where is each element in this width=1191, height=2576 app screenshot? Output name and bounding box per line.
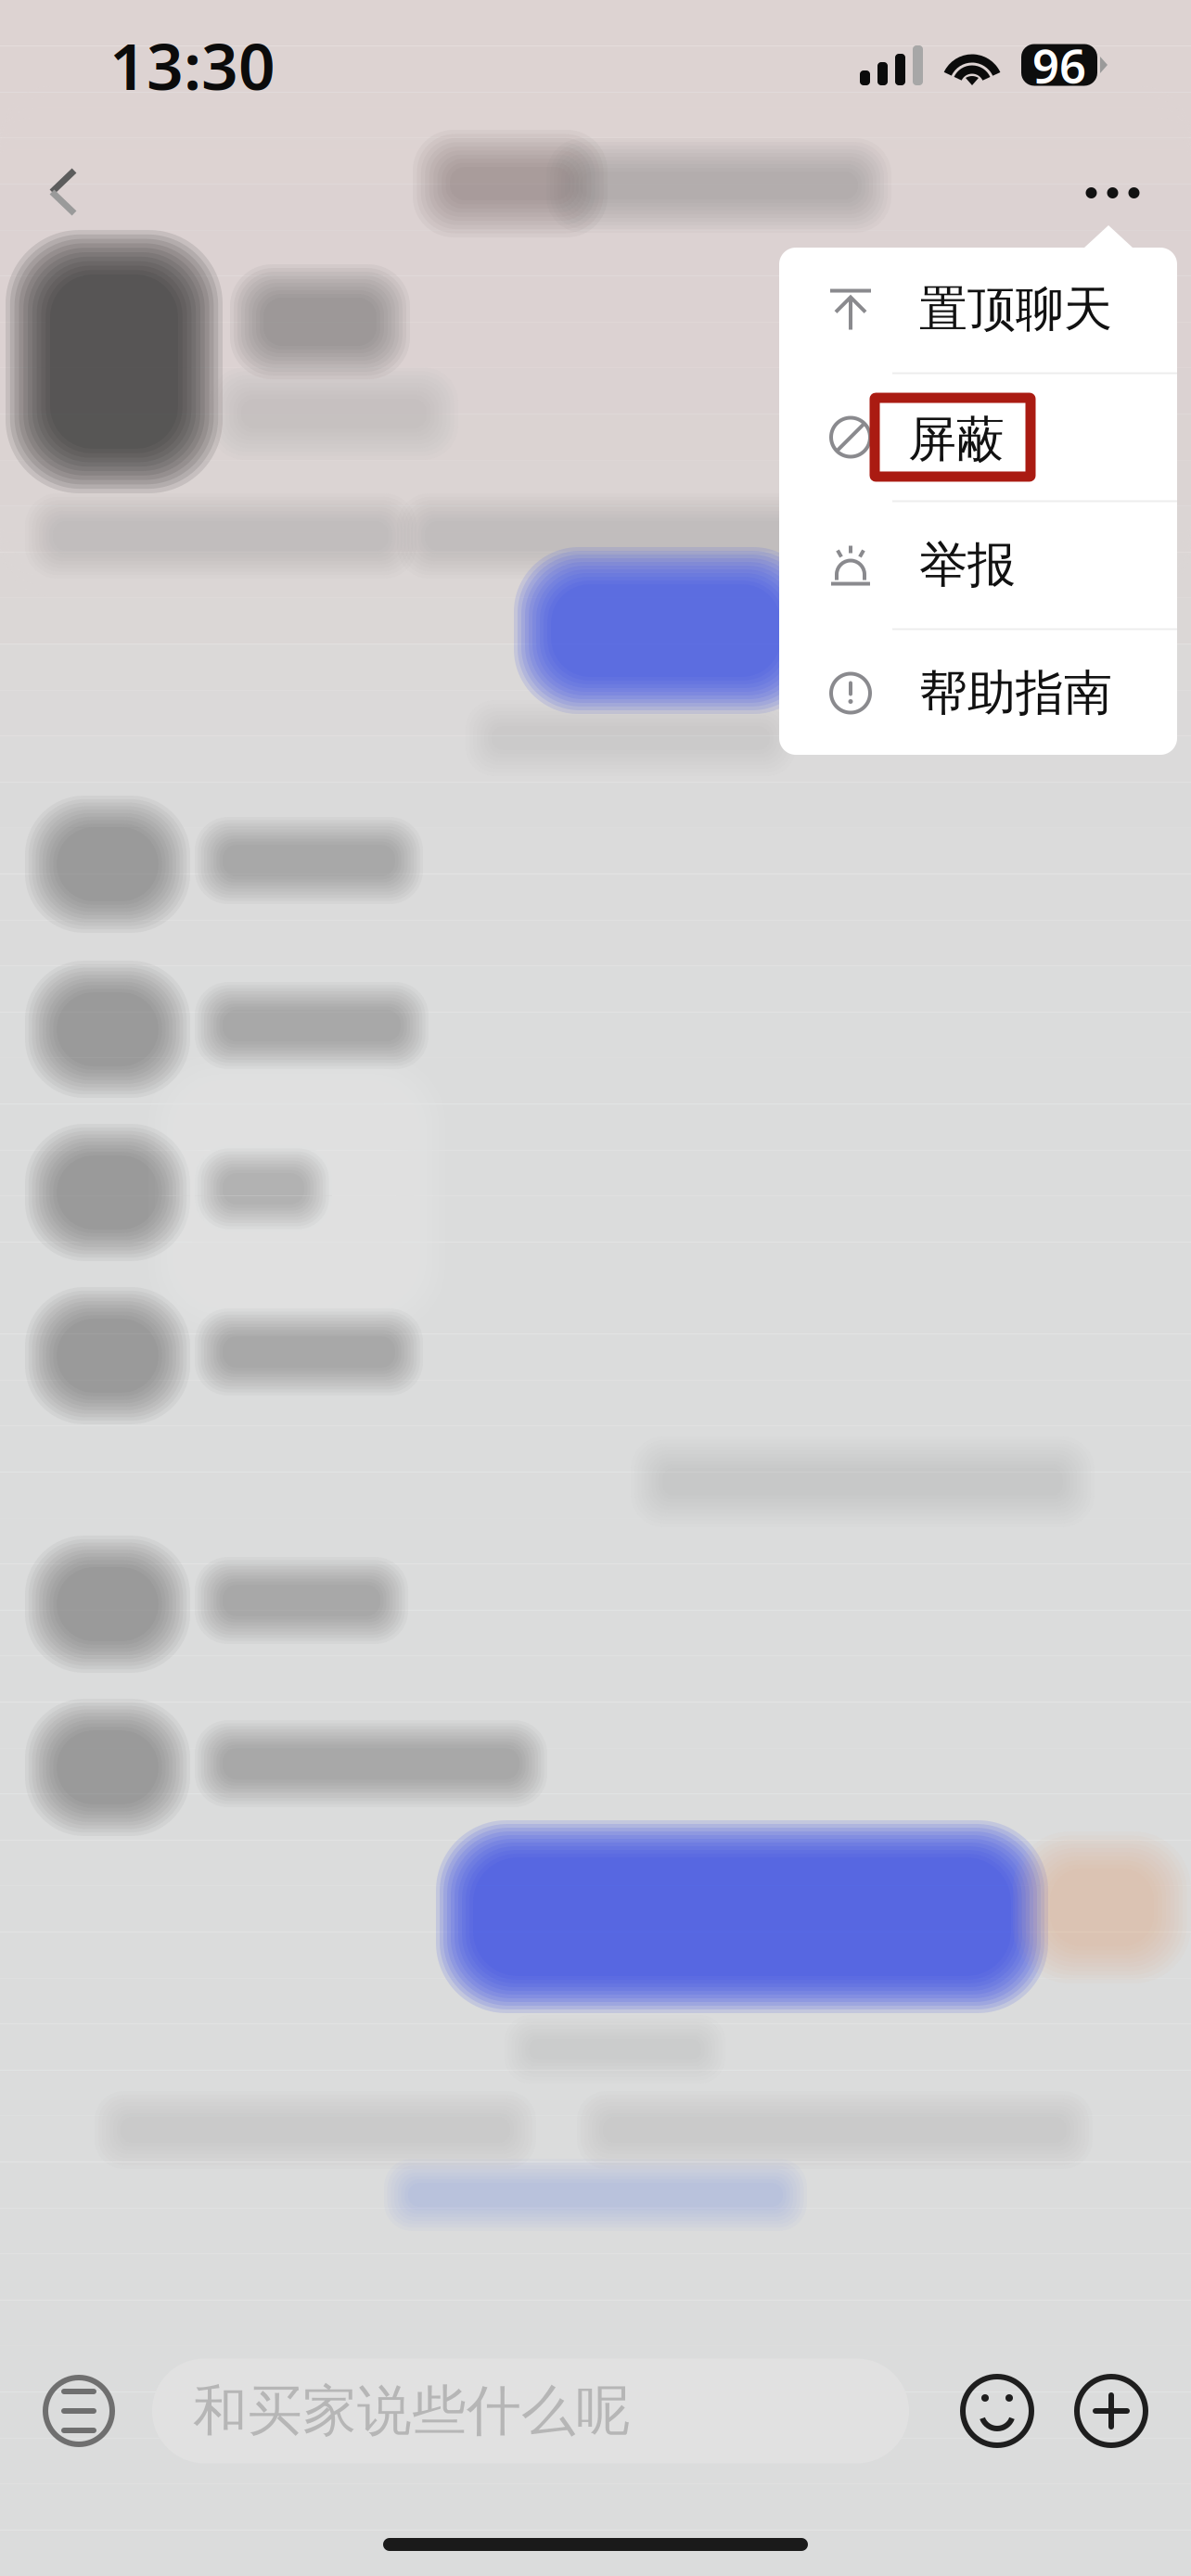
staticText: 13:30 <box>109 22 275 108</box>
button[interactable]: Emoji <box>954 2367 1041 2455</box>
staticText: 96 <box>1032 34 1086 96</box>
staticText: 举报 <box>919 536 1016 595</box>
button[interactable]: 举报 <box>779 502 1177 628</box>
button[interactable]: 屏蔽 <box>779 374 1177 500</box>
button[interactable]: 置顶聊天 <box>779 246 1177 372</box>
button[interactable]: More options <box>1058 135 1167 226</box>
button[interactable]: Back <box>14 130 112 232</box>
staticText: 置顶聊天 <box>919 280 1112 339</box>
staticText: 和买家说些什么呢 <box>193 2378 631 2444</box>
staticText: 屏蔽 <box>908 410 1005 469</box>
button[interactable]: 帮助指南 <box>779 630 1177 756</box>
staticText: 帮助指南 <box>919 664 1112 723</box>
button[interactable]: Voice / keyboard toggle <box>36 2368 122 2454</box>
button[interactable]: Add attachment <box>1068 2367 1155 2455</box>
